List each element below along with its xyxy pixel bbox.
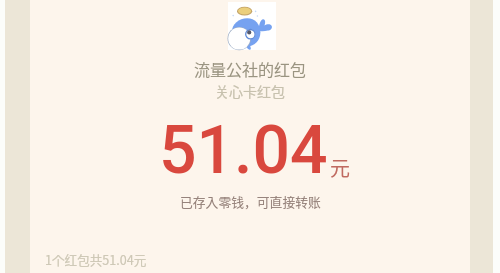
button[interactable]: 已存入零钱，可直接转账 xyxy=(174,189,327,214)
staticText: 已存入零钱，可直接转账 xyxy=(180,192,321,211)
staticText: 51.04 xyxy=(159,112,328,189)
staticText: 1个红包共51.04元 xyxy=(45,250,147,268)
staticText: 流量公社的红包 xyxy=(194,57,307,80)
staticText: 元 xyxy=(330,153,350,182)
button[interactable]: 1个红包共51.04元 xyxy=(39,247,153,271)
button[interactable]: Sender avatar, 流量公社 xyxy=(228,2,276,50)
staticText: 关心卡红包 xyxy=(215,81,285,101)
